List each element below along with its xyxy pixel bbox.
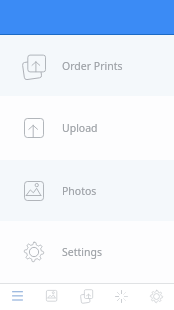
staticText: Photos <box>62 184 97 198</box>
button[interactable]: Upload <box>0 96 174 160</box>
button[interactable]: Photos <box>34 284 69 310</box>
staticText: Settings <box>62 245 102 259</box>
staticText: Order Prints <box>62 59 123 73</box>
button[interactable]: Order prints <box>69 284 104 310</box>
button[interactable]: Order Prints <box>0 35 174 96</box>
button[interactable]: Menu <box>0 284 34 310</box>
staticText: Upload <box>62 121 98 135</box>
button[interactable]: Loading <box>104 284 139 310</box>
button[interactable]: Settings <box>0 221 174 283</box>
button[interactable]: Photos <box>0 160 174 221</box>
button[interactable]: Settings <box>139 284 174 310</box>
